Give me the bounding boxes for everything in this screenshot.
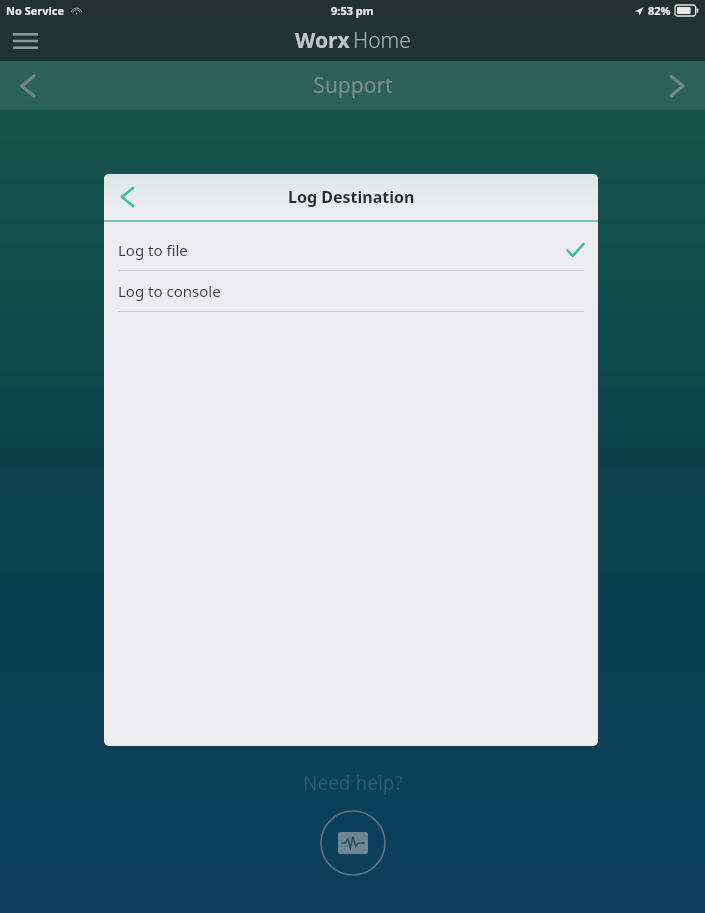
staticText: 9:53 pm bbox=[331, 3, 374, 18]
staticText: Home bbox=[353, 26, 411, 55]
staticText: No Service bbox=[6, 3, 65, 18]
button[interactable]: Menu bbox=[4, 20, 46, 61]
staticText: Log to file bbox=[118, 240, 188, 260]
staticText: Support bbox=[313, 71, 393, 100]
button[interactable]: Log to file bbox=[104, 230, 598, 271]
button[interactable]: Back bbox=[104, 174, 150, 220]
button[interactable]: Previous bbox=[0, 61, 56, 110]
staticText: Log to console bbox=[118, 281, 221, 301]
staticText: Worx bbox=[295, 26, 350, 55]
button[interactable]: Log to console bbox=[104, 271, 598, 312]
staticText: Log Destination bbox=[288, 186, 415, 208]
staticText: 82% bbox=[648, 3, 671, 18]
button[interactable]: Next bbox=[649, 61, 705, 110]
staticText: Need help? bbox=[303, 770, 403, 796]
button[interactable]: Support diagnostics bbox=[320, 810, 386, 876]
